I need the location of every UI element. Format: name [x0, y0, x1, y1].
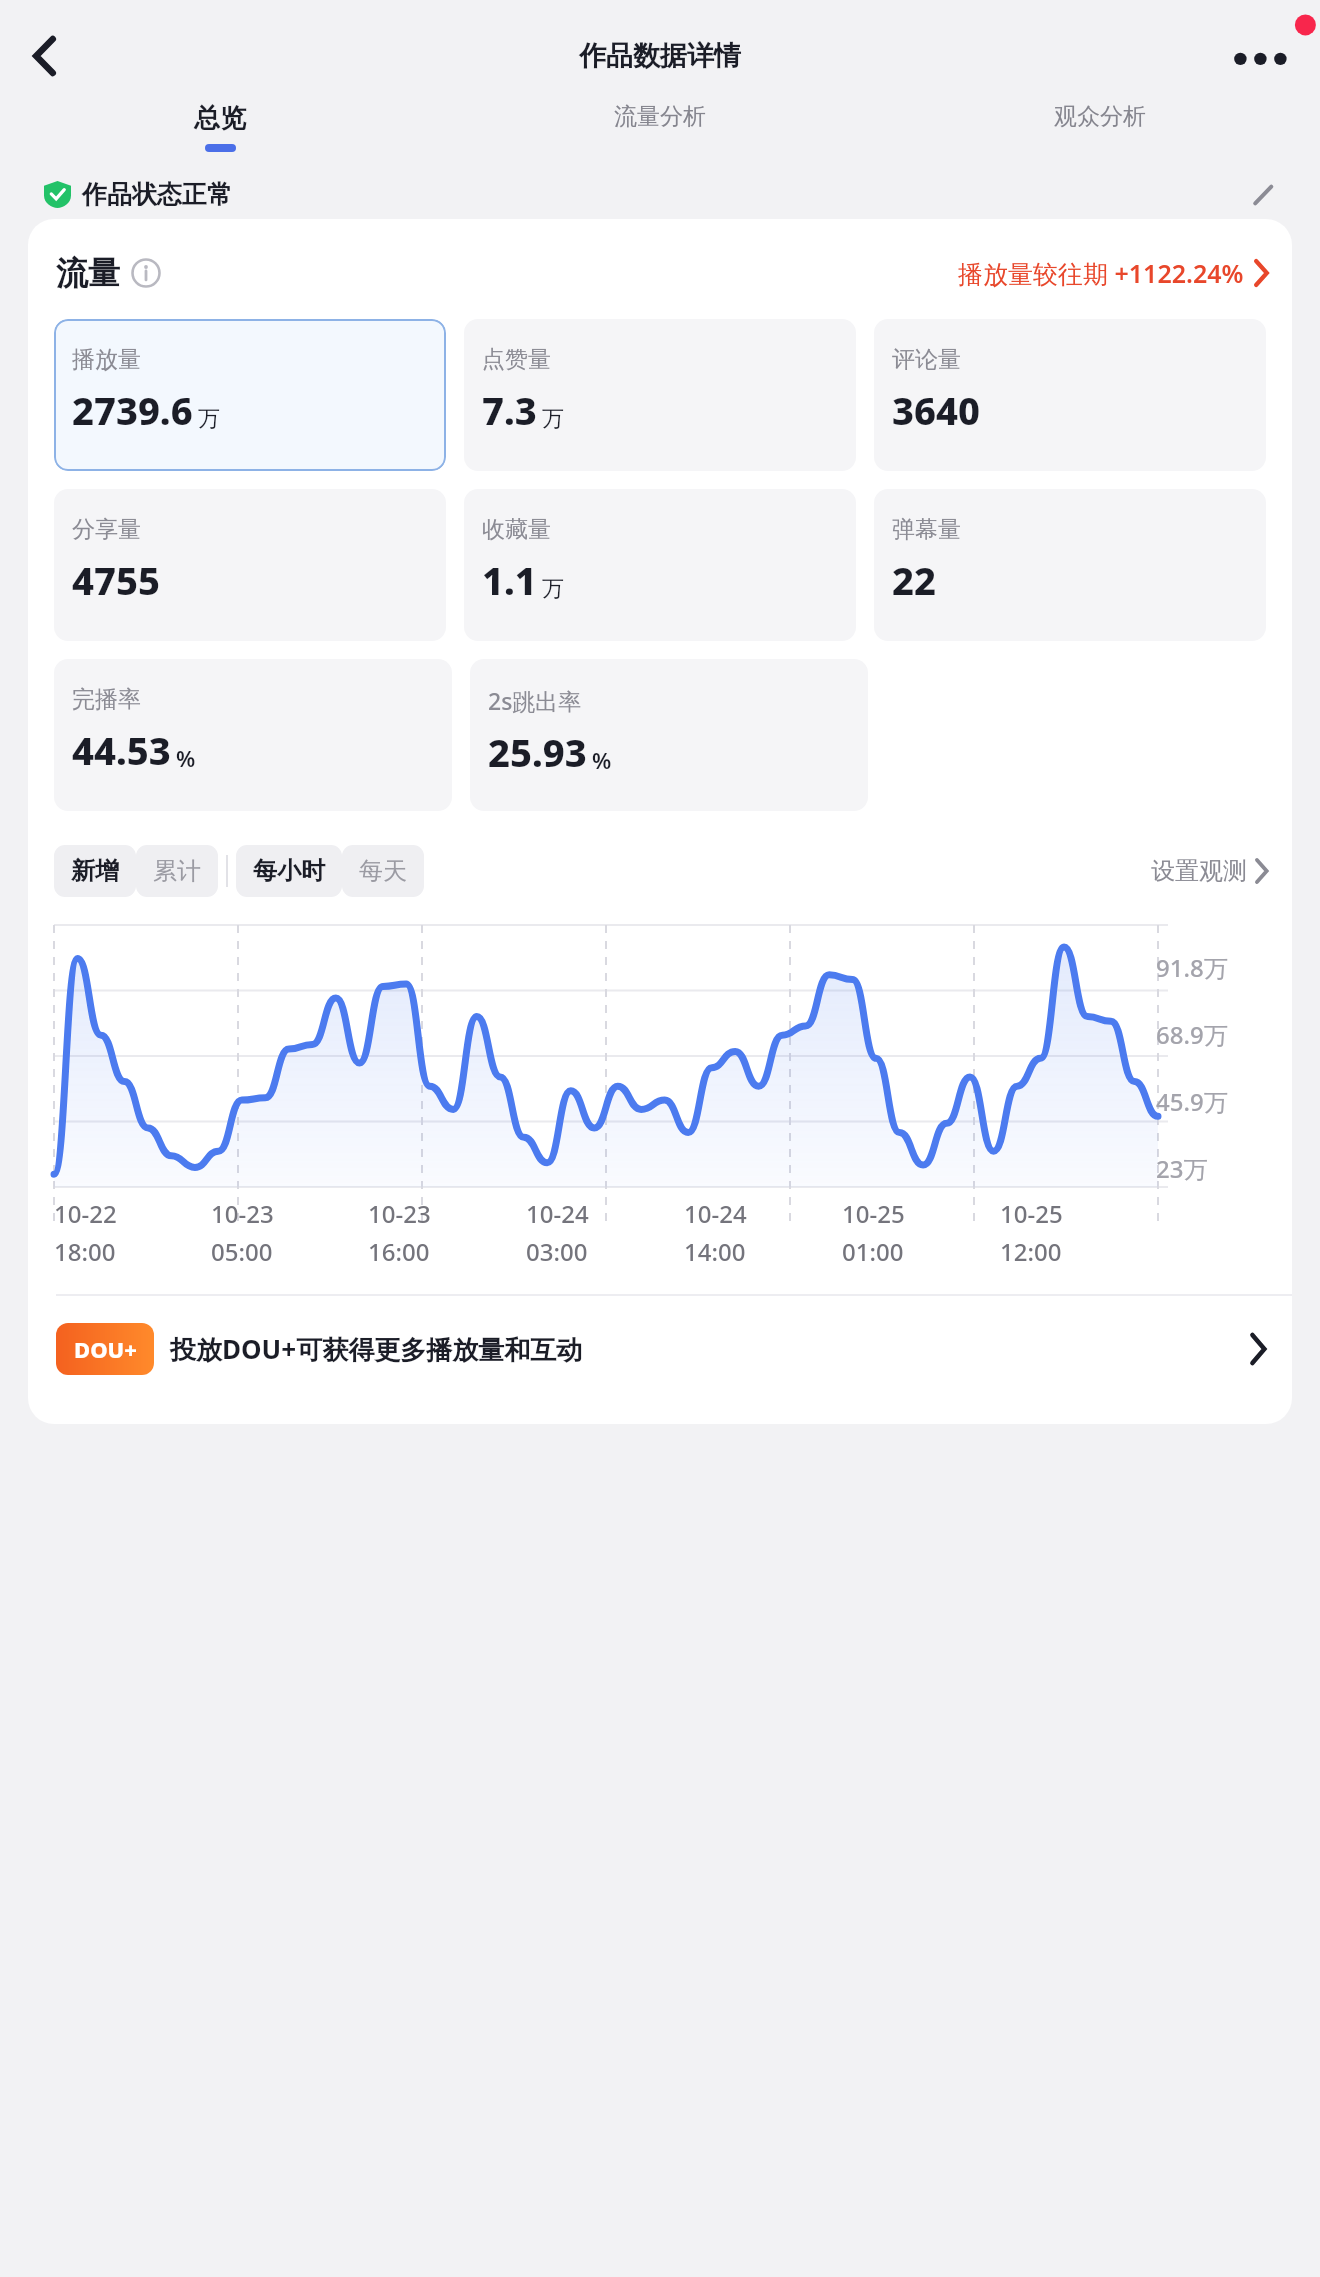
button[interactable]: 点赞量: [464, 319, 856, 471]
staticText: 播放量较往期 +1122.24%: [958, 256, 1244, 290]
staticText: 完播率: [72, 685, 141, 714]
staticText: 投放DOU+可获得更多播放量和互动: [170, 1331, 583, 1367]
button[interactable]: 收藏量: [464, 489, 856, 641]
button[interactable]: 评论量: [874, 319, 1266, 471]
button[interactable]: 分享量: [54, 489, 446, 641]
staticText: 万: [198, 405, 220, 433]
button[interactable]: 2s跳出率: [470, 659, 868, 811]
staticText: 10-24: [526, 1197, 589, 1230]
staticText: 16:00: [368, 1235, 430, 1268]
staticText: 点赞量: [482, 345, 551, 374]
staticText: 2739.6: [72, 384, 193, 436]
button[interactable]: Info: [131, 258, 161, 288]
staticText: 流量分析: [614, 102, 706, 131]
button[interactable]: 完播率: [54, 659, 452, 811]
staticText: 18:00: [54, 1235, 116, 1268]
staticText: 10-24: [684, 1197, 747, 1230]
staticText: 25.93: [488, 726, 587, 778]
staticText: 45.9万: [1156, 1085, 1228, 1118]
staticText: 万: [542, 575, 564, 603]
button[interactable]: 播放量: [54, 319, 446, 471]
button[interactable]: Back: [16, 27, 74, 85]
staticText: 作品数据详情: [579, 39, 741, 73]
staticText: 10-25: [842, 1197, 905, 1230]
button[interactable]: 弹幕量: [874, 489, 1266, 641]
staticText: 05:00: [211, 1235, 273, 1268]
button[interactable]: 新增: [54, 845, 136, 897]
staticText: 设置观测: [1151, 856, 1247, 886]
staticText: 收藏量: [482, 515, 551, 544]
staticText: 68.9万: [1156, 1018, 1228, 1051]
staticText: 评论量: [892, 345, 961, 374]
staticText: 弹幕量: [892, 515, 961, 544]
staticText: 每小时: [253, 856, 325, 886]
button[interactable]: 播放量较往期 +1122.24%: [958, 256, 1268, 290]
staticText: %: [592, 745, 612, 775]
staticText: 44.53: [72, 724, 171, 776]
button[interactable]: 观众分析: [880, 92, 1320, 140]
staticText: DOU+: [74, 1334, 137, 1364]
button[interactable]: 累计: [136, 845, 218, 897]
staticText: 23万: [1156, 1152, 1208, 1185]
button[interactable]: 设置观测: [1151, 856, 1268, 886]
button[interactable]: More options: [1222, 27, 1302, 85]
staticText: 7.3: [482, 384, 537, 436]
staticText: 流量: [56, 253, 120, 293]
staticText: 3640: [892, 384, 980, 436]
button[interactable]: 作品状态正常: [0, 178, 1320, 211]
staticText: 每天: [359, 856, 407, 886]
other: Open DOU+: [1250, 1335, 1266, 1363]
staticText: 10-23: [368, 1197, 431, 1230]
staticText: 10-25: [1000, 1197, 1063, 1230]
staticText: 12:00: [1000, 1235, 1062, 1268]
staticText: 01:00: [842, 1235, 904, 1268]
staticText: 作品状态正常: [82, 179, 232, 210]
staticText: 万: [542, 405, 564, 433]
staticText: 10-23: [211, 1197, 274, 1230]
staticText: 14:00: [684, 1235, 746, 1268]
staticText: 10-22: [54, 1197, 117, 1230]
staticText: 总览: [194, 102, 246, 135]
button[interactable]: DOU+: [28, 1296, 1292, 1402]
button[interactable]: 流量分析: [440, 92, 880, 140]
staticText: 观众分析: [1054, 102, 1146, 131]
other: Edit: [1250, 182, 1276, 208]
staticText: 4755: [72, 554, 160, 606]
button[interactable]: 每小时: [236, 845, 342, 897]
staticText: 03:00: [526, 1235, 588, 1268]
staticText: 累计: [153, 856, 201, 886]
button[interactable]: 总览: [0, 92, 440, 152]
staticText: 播放量: [72, 345, 141, 374]
staticText: 1.1: [482, 554, 537, 606]
staticText: 新增: [71, 856, 119, 886]
staticText: 91.8万: [1156, 951, 1228, 984]
staticText: 2s跳出率: [488, 685, 582, 716]
staticText: %: [176, 743, 196, 773]
button[interactable]: 每天: [342, 845, 424, 897]
staticText: 分享量: [72, 515, 141, 544]
staticText: 22: [892, 554, 936, 606]
